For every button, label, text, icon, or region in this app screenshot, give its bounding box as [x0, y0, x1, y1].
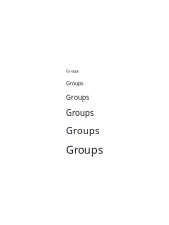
staticText: Groups [66, 143, 103, 157]
staticText: Groups [66, 80, 84, 87]
staticText: Groups [66, 124, 99, 137]
staticText: Groups [66, 107, 94, 118]
staticText: Groups [66, 68, 79, 74]
staticText: Groups [66, 93, 89, 102]
